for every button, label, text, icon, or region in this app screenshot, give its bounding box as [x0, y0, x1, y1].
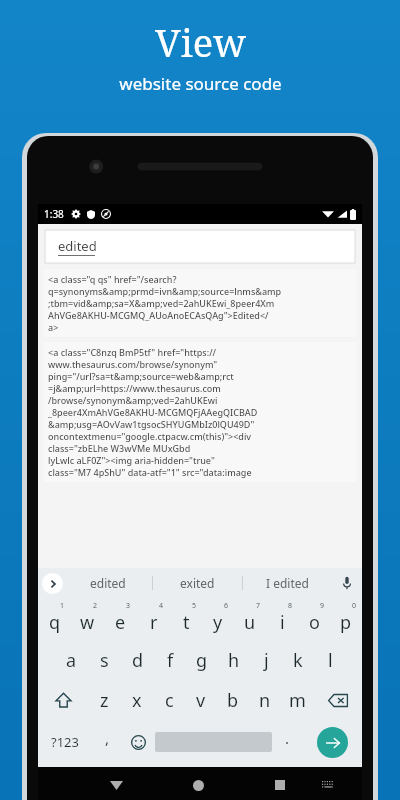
- staticText: &amp;usg=AOvVaw1tgsocSHYUGMbIz0lQU49D": [48, 418, 255, 430]
- button[interactable]: ,: [92, 720, 122, 764]
- button[interactable]: <a class="q qs" href="/search?: [43, 269, 357, 337]
- button[interactable]: Shift: [38, 680, 88, 720]
- button[interactable]: m: [281, 680, 313, 720]
- staticText: n: [259, 688, 271, 713]
- staticText: 6: [224, 601, 229, 611]
- button[interactable]: More suggestions: [42, 573, 63, 594]
- staticText: ?123: [51, 733, 79, 751]
- staticText: k: [293, 648, 303, 673]
- button[interactable]: Home: [184, 771, 212, 799]
- button[interactable]: edited: [63, 568, 152, 598]
- button[interactable]: exited: [153, 568, 242, 598]
- staticText: y: [213, 610, 223, 635]
- staticText: 9: [320, 601, 325, 611]
- staticText: j: [264, 648, 269, 673]
- staticText: I edited: [266, 575, 309, 591]
- button[interactable]: ?123: [38, 720, 92, 764]
- button[interactable]: s: [88, 640, 121, 680]
- button[interactable]: 5: [170, 598, 202, 640]
- button[interactable]: b: [217, 680, 249, 720]
- staticText: 7: [256, 601, 261, 611]
- staticText: s: [100, 648, 109, 673]
- button[interactable]: <a class="C8nzq BmP5tf" href="https://: [43, 342, 357, 482]
- staticText: /browse/synonym&amp;ved=2ahUKEwi: [48, 394, 218, 406]
- button[interactable]: 8: [266, 598, 298, 640]
- staticText: edited: [58, 237, 97, 255]
- staticText: edited: [90, 575, 126, 591]
- button[interactable]: Emoji: [122, 720, 155, 764]
- button[interactable]: 2: [71, 598, 104, 640]
- button[interactable]: .: [272, 720, 302, 764]
- staticText: l: [328, 648, 333, 673]
- button[interactable]: g: [186, 640, 218, 680]
- staticText: a>: [48, 321, 59, 333]
- staticText: 5: [192, 601, 197, 611]
- staticText: ,: [105, 728, 110, 748]
- button[interactable]: 3: [104, 598, 137, 640]
- staticText: w: [80, 610, 95, 635]
- staticText: AhVGe8AKHU-MCGMQ_AUoAnoECAsQAg">Edited</: [48, 309, 269, 321]
- staticText: .: [285, 728, 290, 748]
- staticText: class="M7 4pShU" data-atf="1" src="data:…: [48, 466, 252, 478]
- button[interactable]: f: [154, 640, 186, 680]
- button[interactable]: Switch keyboard: [315, 772, 341, 798]
- staticText: r: [150, 610, 158, 635]
- button[interactable]: 6: [202, 598, 234, 640]
- staticText: www.thesaurus.com/browse/synonym": [48, 358, 218, 370]
- staticText: 2: [93, 601, 98, 611]
- button[interactable]: Hide keyboard: [102, 771, 130, 799]
- button[interactable]: 1: [38, 598, 71, 640]
- button[interactable]: k: [282, 640, 314, 680]
- staticText: oncontextmenu="google.ctpacw.cm(this)"><…: [48, 430, 252, 442]
- button[interactable]: v: [185, 680, 217, 720]
- button[interactable]: 7: [234, 598, 266, 640]
- staticText: x: [132, 688, 142, 713]
- staticText: p: [340, 610, 352, 635]
- staticText: g: [196, 648, 208, 673]
- staticText: b: [227, 688, 239, 713]
- button[interactable]: Recents: [266, 771, 294, 799]
- button[interactable]: 9: [298, 598, 330, 640]
- button[interactable]: d: [121, 640, 154, 680]
- staticText: d: [132, 648, 144, 673]
- staticText: 0: [352, 601, 357, 611]
- button[interactable]: 0: [330, 598, 362, 640]
- button[interactable]: 4: [137, 598, 170, 640]
- staticText: <a class="C8nzq BmP5tf" href="https://: [48, 346, 217, 358]
- button[interactable]: z: [88, 680, 121, 720]
- staticText: class="zbELhe W3wVMe MUxGbd: [48, 442, 191, 454]
- button[interactable]: Voice input: [332, 568, 362, 598]
- staticText: u: [244, 610, 256, 635]
- staticText: a: [66, 648, 77, 673]
- staticText: e: [115, 610, 126, 635]
- button[interactable]: edited: [45, 230, 355, 263]
- button[interactable]: l: [314, 640, 346, 680]
- staticText: =j&amp;url=https://www.thesaurus.com: [48, 382, 221, 394]
- button[interactable]: j: [250, 640, 282, 680]
- button[interactable]: a: [55, 640, 88, 680]
- staticText: website source code: [119, 72, 282, 95]
- staticText: z: [100, 688, 109, 713]
- staticText: 1: [60, 601, 65, 611]
- staticText: c: [165, 688, 174, 713]
- staticText: ;tbm=vid&amp;sa=X&amp;ved=2ahUKEwi_8peer…: [48, 297, 275, 309]
- button[interactable]: I edited: [243, 568, 332, 598]
- staticText: 3: [126, 601, 131, 611]
- button[interactable]: h: [218, 640, 250, 680]
- button[interactable]: Search: [317, 727, 348, 758]
- button[interactable]: n: [249, 680, 281, 720]
- staticText: t: [183, 610, 190, 635]
- staticText: h: [228, 648, 240, 673]
- staticText: i: [280, 610, 285, 635]
- staticText: ping="/url?sa=t&amp;source=web&amp;rct: [48, 370, 234, 382]
- staticText: o: [309, 610, 320, 635]
- button[interactable]: Backspace: [313, 680, 362, 720]
- staticText: f: [167, 648, 174, 673]
- staticText: q=synonyms&amp;prmd=ivn&amp;source=lnms&…: [48, 285, 282, 297]
- staticText: q: [49, 610, 61, 635]
- button[interactable]: c: [153, 680, 185, 720]
- staticText: 1:38: [44, 207, 64, 221]
- button[interactable]: x: [121, 680, 153, 720]
- staticText: 8: [288, 601, 293, 611]
